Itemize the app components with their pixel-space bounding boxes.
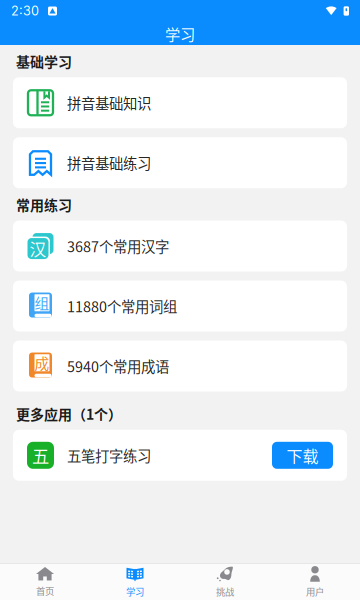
staticText: 汉: [29, 236, 46, 261]
staticText: 11880个常用词组: [67, 296, 177, 316]
staticText: 组: [34, 292, 49, 313]
button[interactable]: 首页: [0, 564, 90, 600]
staticText: 五: [32, 443, 49, 468]
staticText: 学习: [165, 22, 195, 45]
button[interactable]: 拼音基础练习: [13, 137, 347, 188]
staticText: 用户: [306, 585, 324, 598]
button[interactable]: 挑战: [180, 564, 270, 600]
staticText: 2:30: [11, 3, 39, 19]
staticText: 更多应用（1个）: [16, 403, 122, 424]
staticText: 挑战: [216, 585, 234, 598]
staticText: 拼音基础练习: [67, 152, 151, 173]
staticText: 5940个常用成语: [67, 356, 169, 376]
button[interactable]: 拼音基础知识: [13, 77, 347, 128]
staticText: 学习: [126, 585, 144, 598]
staticText: 基础学习: [16, 51, 72, 71]
staticText: 成: [34, 352, 49, 373]
button[interactable]: 汉: [13, 220, 347, 271]
staticText: 常用练习: [16, 194, 72, 215]
staticText: 下载: [286, 444, 318, 467]
button[interactable]: 五: [13, 430, 347, 481]
staticText: 五笔打字练习: [67, 445, 151, 466]
button[interactable]: 成: [13, 340, 347, 391]
staticText: 首页: [36, 584, 54, 597]
button[interactable]: 学习: [90, 564, 180, 600]
staticText: 3687个常用汉字: [67, 236, 169, 256]
button[interactable]: 用户: [270, 564, 360, 600]
staticText: 拼音基础知识: [67, 92, 151, 113]
button[interactable]: 组: [13, 280, 347, 331]
